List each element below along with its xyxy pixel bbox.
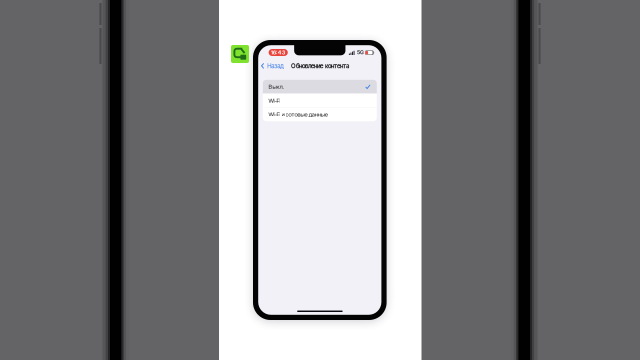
staticText: 16:43 <box>271 49 286 56</box>
staticText: данные <box>309 111 328 118</box>
staticText: 5G <box>357 49 364 56</box>
staticText: Обновление <box>291 62 323 70</box>
staticText: Выкл. <box>268 83 283 90</box>
button[interactable]: Wi-Fi <box>263 107 377 121</box>
staticText: и <box>281 111 284 118</box>
staticText: контента <box>325 62 349 70</box>
staticText: Назад <box>267 62 284 70</box>
staticText: сотовые <box>286 111 308 118</box>
button[interactable]: Назад <box>258 59 288 72</box>
staticText: Wi-Fi <box>268 111 280 118</box>
staticText: Wi-Fi <box>268 97 280 104</box>
button[interactable]: Выкл. <box>263 80 377 94</box>
button[interactable]: Wi-Fi <box>263 94 377 107</box>
